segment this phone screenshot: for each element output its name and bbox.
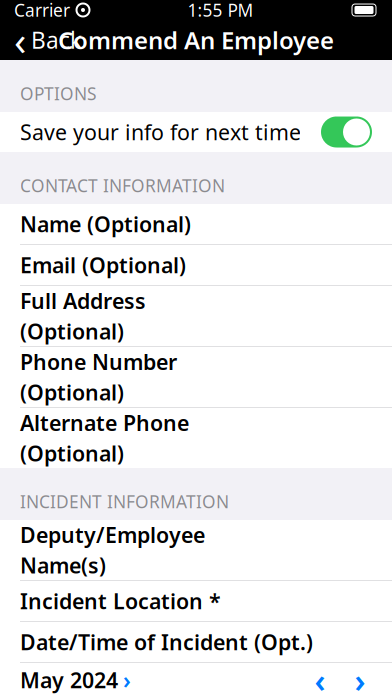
staticText: Email (Optional): [20, 251, 186, 279]
staticText: ‹: [314, 659, 325, 696]
staticText: Name(s): [20, 551, 106, 579]
staticText: (Optional): [20, 439, 124, 467]
staticText: ‹: [14, 13, 26, 66]
staticText: Name (Optional): [20, 210, 191, 238]
staticText: Phone Number: [20, 348, 177, 376]
button[interactable]: Incident Location *: [0, 581, 392, 621]
button[interactable]: Next month: [340, 663, 380, 696]
staticText: Save your info for next time: [20, 118, 301, 146]
button[interactable]: Phone Number: [0, 347, 392, 407]
button[interactable]: Deputy/Employee: [0, 520, 392, 580]
button[interactable]: Name (Optional): [0, 204, 392, 244]
staticText: Incident Location *: [20, 587, 221, 615]
button[interactable]: Date/Time of Incident (Opt.): [0, 622, 392, 662]
button[interactable]: Previous month: [300, 663, 340, 696]
button[interactable]: ‹: [0, 7, 82, 72]
button[interactable]: Save your info for next time: [0, 112, 392, 152]
staticText: Back: [31, 25, 82, 55]
staticText: Commend An Employee: [58, 24, 334, 56]
staticText: INCIDENT INFORMATION: [20, 490, 229, 513]
staticText: OPTIONS: [20, 82, 97, 105]
button[interactable]: May 2024: [0, 661, 131, 696]
staticText: Alternate Phone: [20, 409, 189, 437]
staticText: ›: [123, 665, 131, 695]
staticText: Full Address: [20, 287, 146, 315]
staticText: CONTACT INFORMATION: [20, 174, 225, 197]
staticText: May 2024: [20, 666, 118, 694]
staticText: (Optional): [20, 317, 124, 345]
staticText: Deputy/Employee: [20, 521, 205, 549]
staticText: ›: [354, 659, 365, 696]
staticText: (Optional): [20, 378, 124, 406]
button[interactable]: Alternate Phone: [0, 408, 392, 468]
staticText: 1:55 PM: [187, 0, 253, 21]
staticText: Date/Time of Incident (Opt.): [20, 628, 313, 656]
button[interactable]: Full Address: [0, 286, 392, 346]
button[interactable]: Email (Optional): [0, 245, 392, 285]
staticText: Carrier: [14, 0, 70, 21]
